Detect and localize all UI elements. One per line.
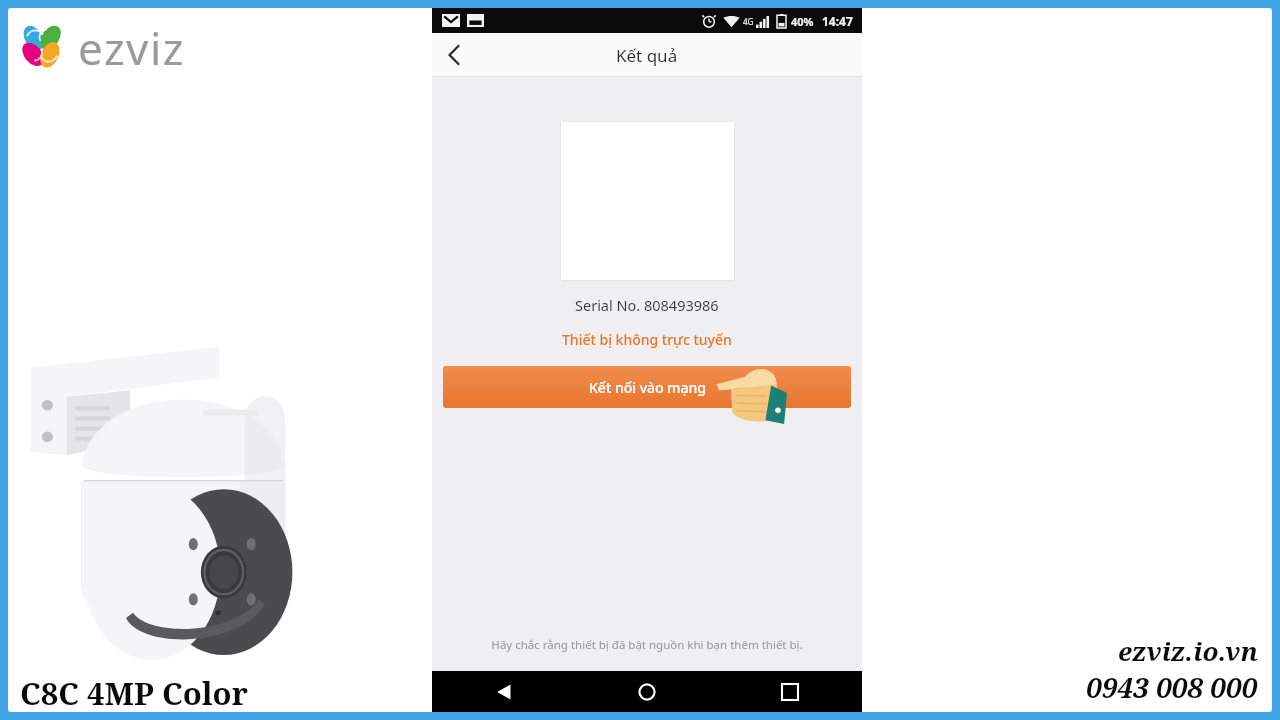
staticText: 14:47 (822, 13, 853, 29)
staticText: Serial No. 808493986 (575, 295, 719, 315)
staticText: 0943 008 000 (1086, 668, 1258, 706)
button[interactable]: Home (621, 671, 673, 712)
staticText: C8C 4MP Color (20, 672, 248, 712)
staticText: Kết quả (616, 44, 678, 67)
staticText: ezviz (78, 18, 185, 74)
staticText: ezviz.io.vn (1118, 633, 1258, 668)
button[interactable]: Kết nối vào mạng (443, 366, 851, 408)
staticText: Thiết bị không trực tuyến (562, 330, 732, 349)
button[interactable]: Back (478, 671, 530, 712)
staticText: Hãy chắc rằng thiết bị đã bật nguồn khi … (491, 637, 803, 653)
button[interactable]: Recent apps (764, 671, 816, 712)
staticText: 40% (791, 14, 814, 29)
staticText: 4G (743, 16, 754, 27)
staticText: Kết nối vào mạng (589, 378, 706, 397)
button[interactable]: Back (432, 33, 476, 77)
